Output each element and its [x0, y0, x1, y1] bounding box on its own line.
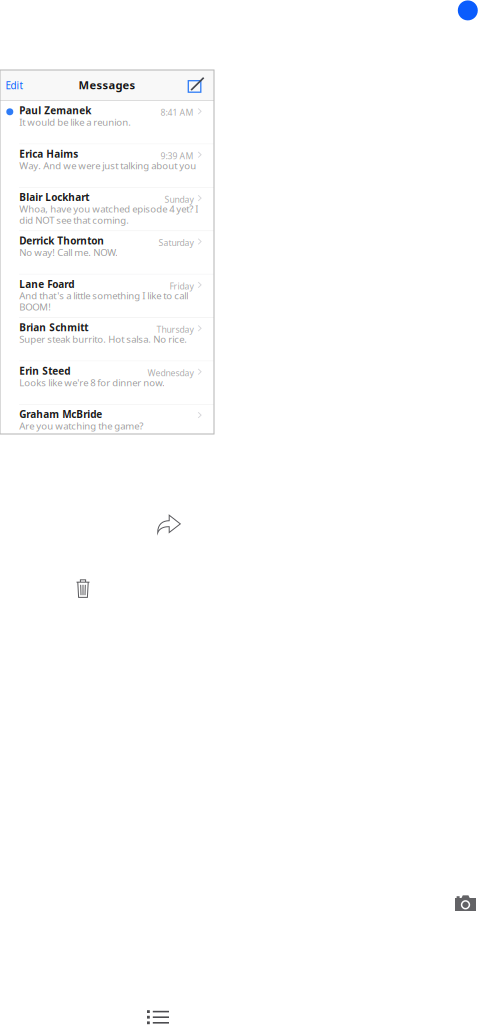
button[interactable]: Camera: [455, 895, 476, 911]
staticText: did NOT see that coming.: [19, 213, 129, 227]
staticText: Way. And we were just talking about you: [19, 159, 196, 172]
staticText: 9:39 AM: [160, 150, 193, 162]
staticText: Wednesday: [147, 367, 193, 379]
staticText: Edit: [5, 79, 23, 92]
button[interactable]: Erin Steed: [0, 361, 214, 405]
staticText: Sunday: [164, 193, 193, 205]
staticText: Thursday: [156, 324, 193, 335]
staticText: Brian Schmitt: [19, 321, 88, 334]
button[interactable]: Compose: [0, 70, 26, 101]
staticText: Erica Haims: [19, 147, 78, 161]
button[interactable]: Lane Foard: [0, 275, 214, 318]
button[interactable]: Brian Schmitt: [0, 318, 214, 361]
staticText: It would be like a reunion.: [19, 115, 131, 129]
button[interactable]: Blair Lockhart: [0, 188, 214, 231]
staticText: Looks like we're 8 for dinner now.: [19, 376, 165, 389]
staticText: 8:41 AM: [160, 107, 193, 118]
staticText: Are you watching the game?: [19, 419, 143, 432]
staticText: Saturday: [158, 237, 193, 249]
button[interactable]: Erica Haims: [0, 144, 214, 188]
staticText: Blair Lockhart: [19, 190, 89, 204]
staticText: No way! Call me. NOW.: [19, 246, 118, 259]
staticText: Erin Steed: [19, 364, 70, 378]
staticText: Friday: [169, 280, 193, 292]
button[interactable]: Delete: [76, 578, 90, 598]
staticText: BOOM!: [19, 300, 51, 313]
staticText: And that's a little something I like to …: [19, 289, 188, 302]
button[interactable]: Paul Zemanek: [0, 101, 214, 144]
button[interactable]: Edit: [0, 70, 30, 101]
staticText: Paul Zemanek: [19, 104, 91, 117]
staticText: Super steak burrito. Hot salsa. No rice.: [19, 332, 187, 346]
staticText: Messages: [78, 77, 135, 93]
button[interactable]: Share: [157, 514, 181, 533]
staticText: Lane Foard: [19, 277, 74, 291]
staticText: Graham McBride: [19, 407, 102, 421]
button[interactable]: List: [147, 1010, 169, 1024]
staticText: Whoa, have you watched episode 4 yet? I: [19, 202, 198, 215]
button[interactable]: Graham McBride: [0, 405, 214, 448]
button[interactable]: Derrick Thornton: [0, 231, 214, 275]
staticText: Derrick Thornton: [19, 234, 104, 247]
